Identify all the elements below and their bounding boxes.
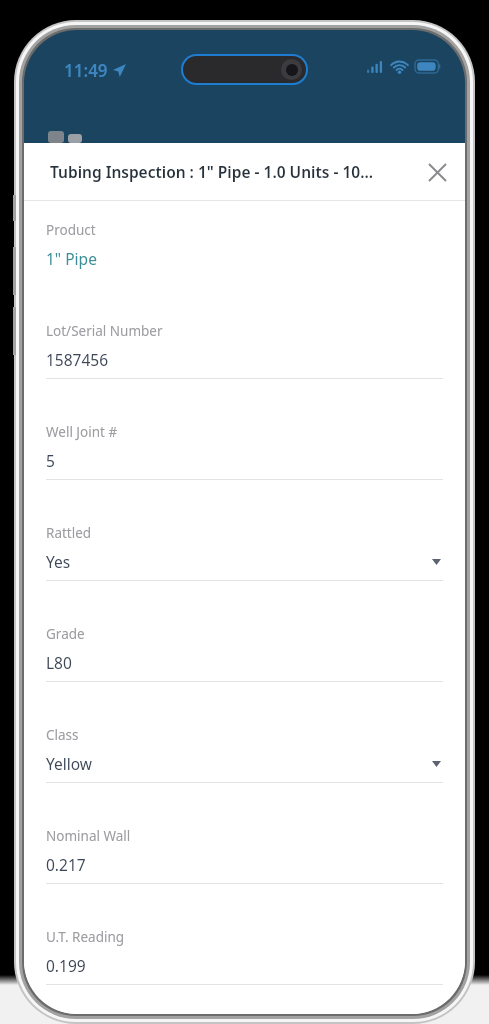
button[interactable]: Product [46, 221, 443, 278]
staticText: 11:49 [64, 59, 108, 82]
button[interactable]: Well Joint # [46, 423, 443, 480]
button[interactable]: U.T. Reading [46, 928, 443, 985]
staticText: 0.199 [46, 955, 86, 976]
staticText: L80 [46, 652, 72, 673]
button[interactable]: Nominal Wall [46, 827, 443, 884]
button[interactable]: Rattled [46, 524, 443, 581]
staticText: 0.217 [46, 854, 86, 875]
staticText: 5 [46, 450, 55, 471]
staticText: Product [46, 221, 96, 239]
staticText: Well Joint # [46, 423, 118, 441]
button[interactable]: Class [46, 726, 443, 783]
staticText: Lot/Serial Number [46, 322, 163, 340]
staticText: Tubing Inspection : 1" Pipe - 1.0 Units … [50, 161, 373, 182]
button[interactable]: Close [415, 150, 459, 194]
staticText: Yellow [46, 753, 92, 774]
staticText: 1" Pipe [46, 248, 97, 269]
staticText: Class [46, 726, 79, 744]
staticText: Nominal Wall [46, 827, 131, 845]
button[interactable]: Grade [46, 625, 443, 682]
staticText: Yes [46, 551, 71, 572]
staticText: Rattled [46, 524, 92, 542]
staticText: U.T. Reading [46, 928, 125, 946]
staticText: Grade [46, 625, 85, 643]
staticText: 1587456 [46, 349, 109, 370]
button[interactable]: Lot/Serial Number [46, 322, 443, 379]
